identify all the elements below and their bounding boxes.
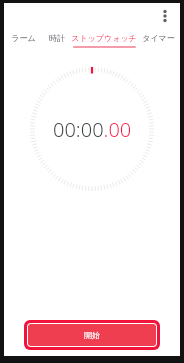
button[interactable]: 時計	[42, 29, 71, 53]
staticText: 開始	[84, 330, 100, 340]
button[interactable]: More options	[155, 6, 175, 26]
staticText: 00:00.00	[53, 116, 132, 143]
button[interactable]: ラーム	[4, 29, 42, 53]
staticText: ストップウォッチ	[71, 33, 137, 43]
button[interactable]: 開始	[28, 324, 156, 346]
staticText: ラーム	[11, 33, 36, 43]
button[interactable]: ストップウォッチ	[71, 29, 137, 53]
staticText: タイマー	[142, 33, 175, 43]
staticText: 時計	[49, 33, 65, 43]
button[interactable]: タイマー	[137, 29, 180, 53]
